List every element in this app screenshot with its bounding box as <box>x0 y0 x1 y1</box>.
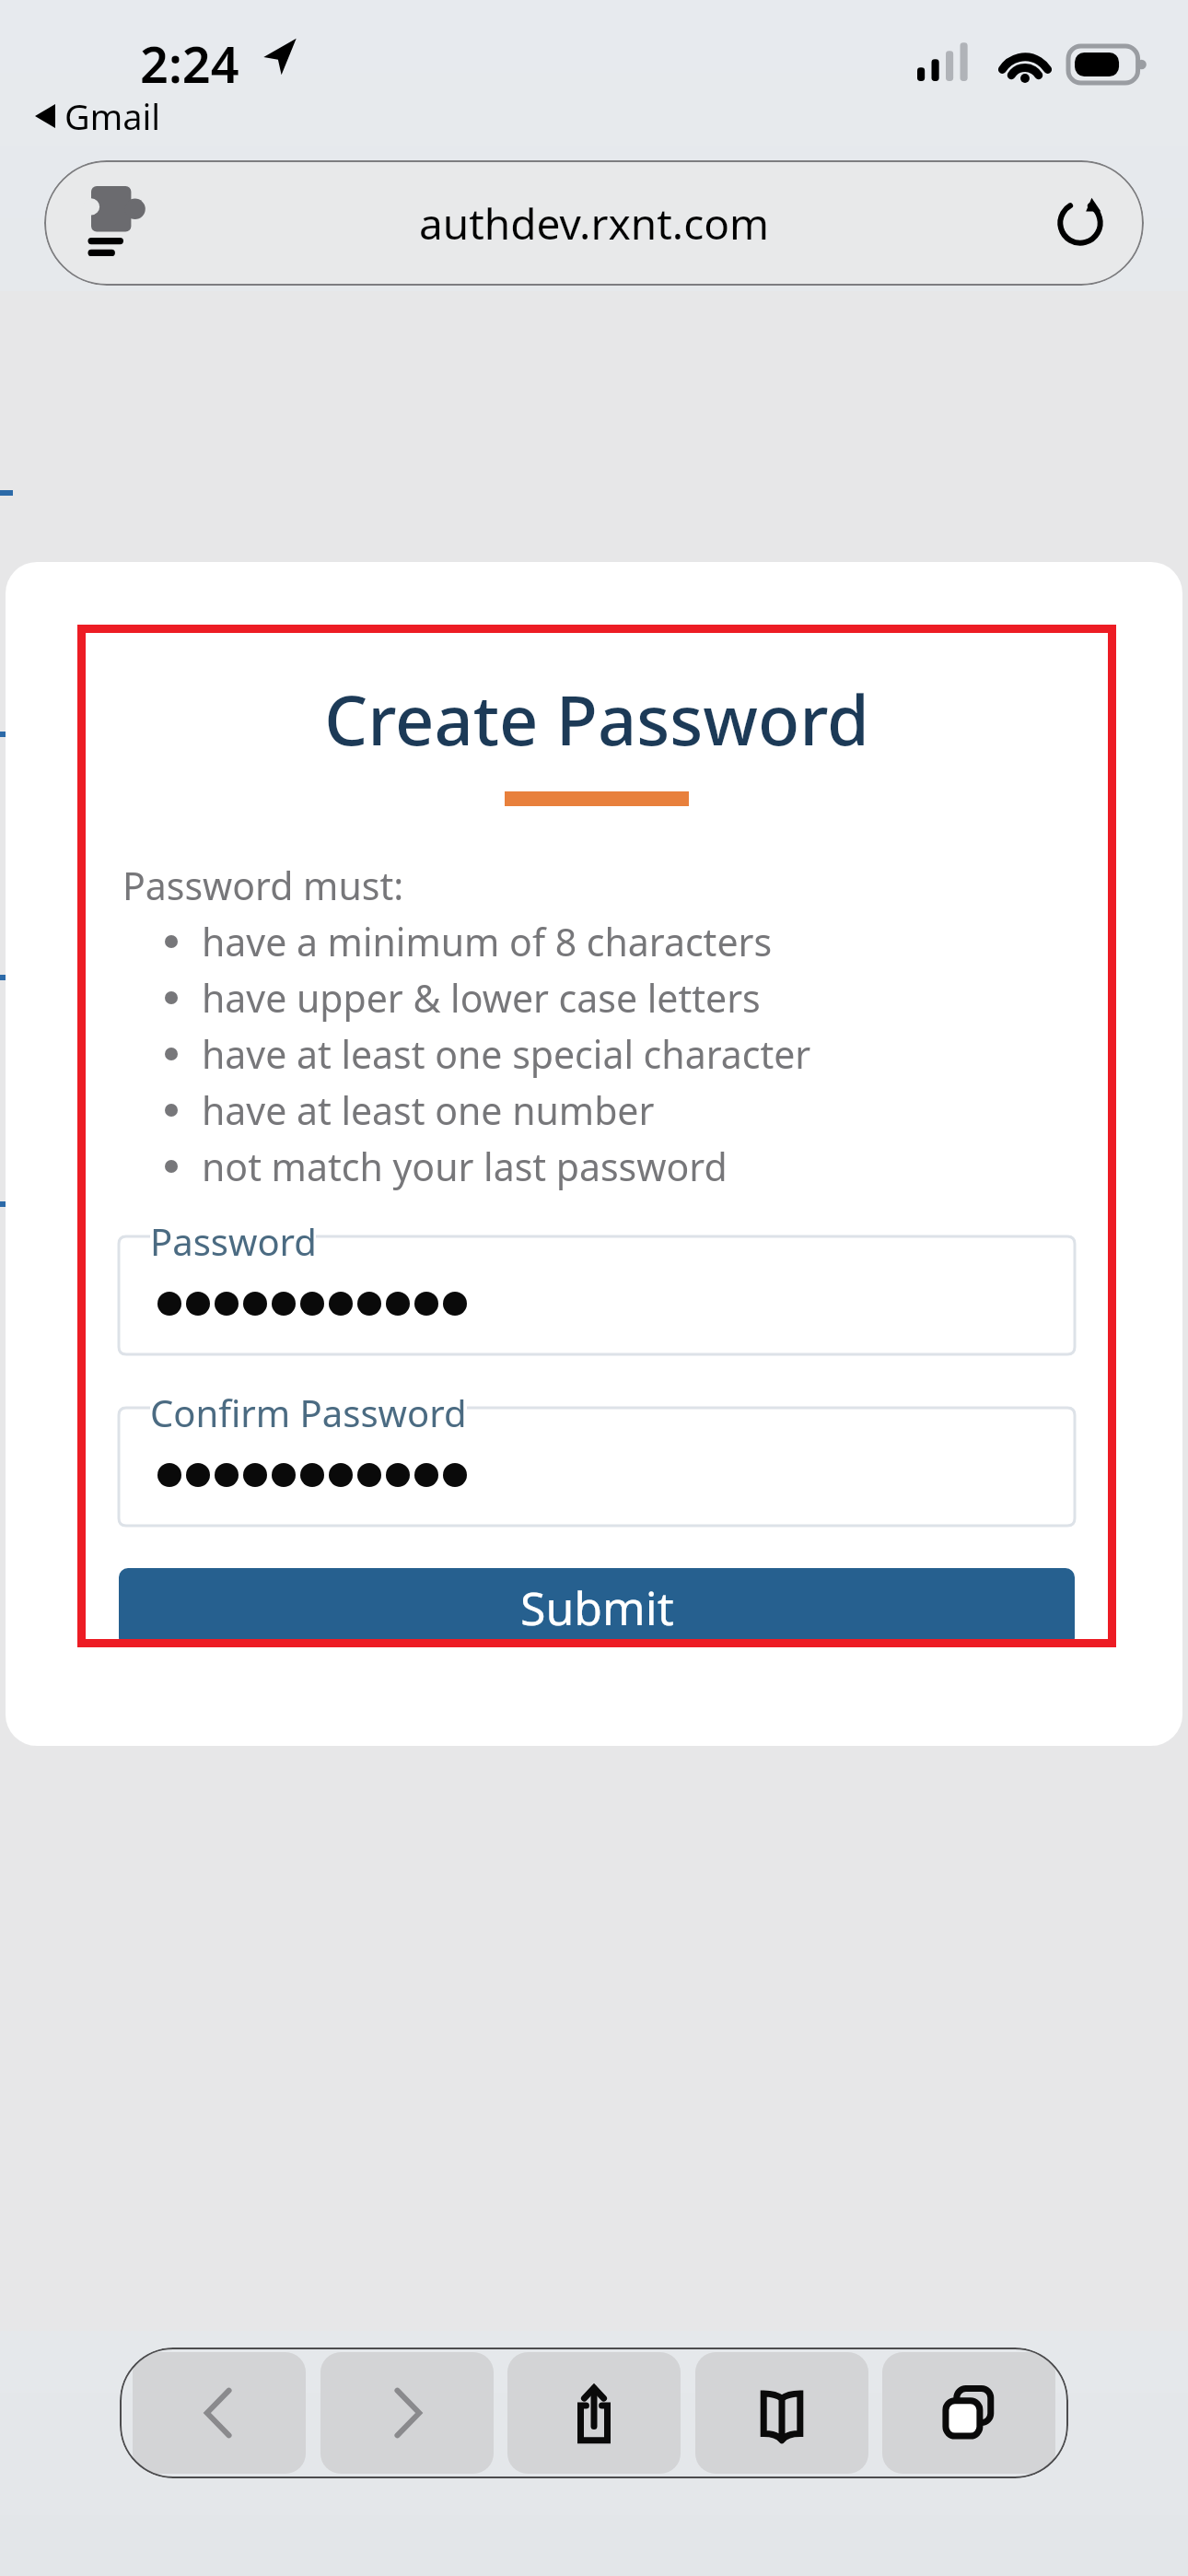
staticText: 2:24 <box>140 29 239 98</box>
button[interactable]: Tabs <box>882 2352 1055 2474</box>
staticText: Submit <box>520 1576 674 1639</box>
staticText: have at least one special character <box>202 1028 811 1080</box>
staticText: Create Password <box>119 673 1075 766</box>
button[interactable]: Page settings <box>44 160 1144 286</box>
staticText: Confirm Password <box>150 1388 467 1437</box>
button[interactable]: Bookmarks <box>695 2352 868 2474</box>
staticText: have upper & lower case letters <box>202 972 761 1024</box>
button[interactable]: Share <box>507 2352 681 2474</box>
staticText: Password <box>150 1216 317 1266</box>
staticText: Password must: <box>122 860 404 911</box>
button[interactable]: Submit <box>119 1568 1075 1647</box>
button[interactable]: Forward <box>320 2352 494 2474</box>
staticText: authdev.rxnt.com <box>419 194 770 252</box>
staticText: have a minimum of 8 characters <box>202 916 773 967</box>
staticText: have at least one number <box>202 1084 655 1136</box>
button[interactable]: Gmail <box>35 92 161 140</box>
button[interactable]: Page settings <box>85 186 149 260</box>
staticText: not match your last password <box>202 1141 728 1192</box>
staticText: Gmail <box>64 92 161 140</box>
button[interactable]: Back <box>133 2352 306 2474</box>
button[interactable]: Reload <box>1052 194 1109 252</box>
